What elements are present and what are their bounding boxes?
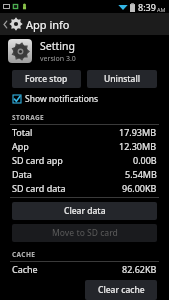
staticText: 5.54MB (125, 168, 157, 180)
staticText: SD card data (12, 182, 66, 194)
staticText: Move to SD card (52, 227, 118, 239)
staticText: 96.00KB (122, 182, 157, 194)
staticText: Uninstall (104, 73, 141, 85)
staticText: Force stop (25, 73, 68, 85)
button[interactable]: Navigate up (0, 15, 27, 33)
button[interactable]: Show notifications (0, 91, 169, 107)
staticText: AM (157, 6, 166, 13)
staticText: 0.00B (133, 154, 157, 166)
staticText: CACHE (12, 250, 36, 259)
staticText: 8:39 (138, 1, 156, 13)
staticText: Cache (12, 263, 38, 275)
staticText: Data (12, 168, 32, 180)
staticText: App info (26, 17, 70, 32)
staticText: Total (12, 126, 33, 138)
staticText: STORAGE (12, 113, 45, 122)
button[interactable]: Uninstall (87, 70, 157, 88)
staticText: 17.93MB (119, 126, 157, 138)
staticText: App (12, 140, 29, 152)
staticText: Clear cache (98, 284, 145, 296)
button[interactable]: Move to SD card (12, 224, 157, 242)
button[interactable]: Clear cache (85, 280, 157, 300)
staticText: SD card app (12, 154, 63, 166)
staticText: Setting (40, 39, 75, 53)
button[interactable]: Force stop (12, 70, 81, 88)
staticText: Show notifications (25, 93, 99, 105)
button[interactable]: Clear data (12, 202, 157, 220)
staticText: Clear data (64, 205, 106, 217)
staticText: 12.30MB (119, 140, 157, 152)
staticText: version 3.0 (40, 54, 76, 64)
staticText: 82.62KB (122, 263, 157, 275)
